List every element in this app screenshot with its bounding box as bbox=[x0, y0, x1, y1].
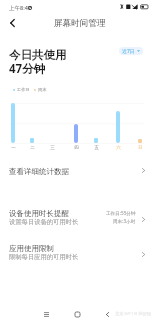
staticText: 京东 6月1日 抢好物 bbox=[115, 311, 152, 317]
staticText: 一 bbox=[11, 145, 16, 151]
staticText: 二 bbox=[30, 145, 35, 151]
button[interactable]: Back bbox=[97, 306, 117, 322]
staticText: 设置每日设备的可用时长 bbox=[9, 218, 79, 226]
staticText: 周末:3小时 bbox=[113, 218, 136, 224]
button[interactable]: Home bbox=[67, 306, 87, 322]
staticText: 四 bbox=[74, 145, 79, 151]
button[interactable]: Back bbox=[2, 13, 22, 33]
staticText: 47分钟 bbox=[9, 61, 46, 77]
button[interactable]: 查看详细统计数据 bbox=[0, 163, 154, 183]
staticText: 日 bbox=[138, 145, 143, 151]
staticText: 三 bbox=[50, 145, 55, 151]
button[interactable]: 近7日 bbox=[119, 47, 143, 55]
button[interactable]: Recent apps bbox=[36, 306, 56, 322]
staticText: 工作日:55分钟 bbox=[106, 210, 136, 216]
staticText: 六 bbox=[116, 145, 121, 151]
staticText: 工作日 bbox=[17, 87, 30, 92]
staticText: 限制每日应用的可用时长 bbox=[9, 253, 79, 261]
staticText: 设备使用时长提醒 bbox=[9, 209, 69, 218]
staticText: 查看详细统计数据 bbox=[9, 167, 69, 176]
staticText: 屏幕时间管理 bbox=[54, 18, 106, 29]
staticText: 五 bbox=[94, 145, 99, 151]
staticText: 上午8:47 bbox=[9, 4, 31, 12]
button[interactable]: 应用使用限制 bbox=[0, 240, 154, 270]
staticText: 今日共使用 bbox=[9, 48, 67, 62]
button[interactable]: 设备使用时长提醒 bbox=[0, 205, 154, 235]
staticText: 周末 bbox=[38, 87, 47, 92]
staticText: 应用使用限制 bbox=[9, 244, 54, 253]
staticText: 近7日 bbox=[122, 48, 135, 55]
